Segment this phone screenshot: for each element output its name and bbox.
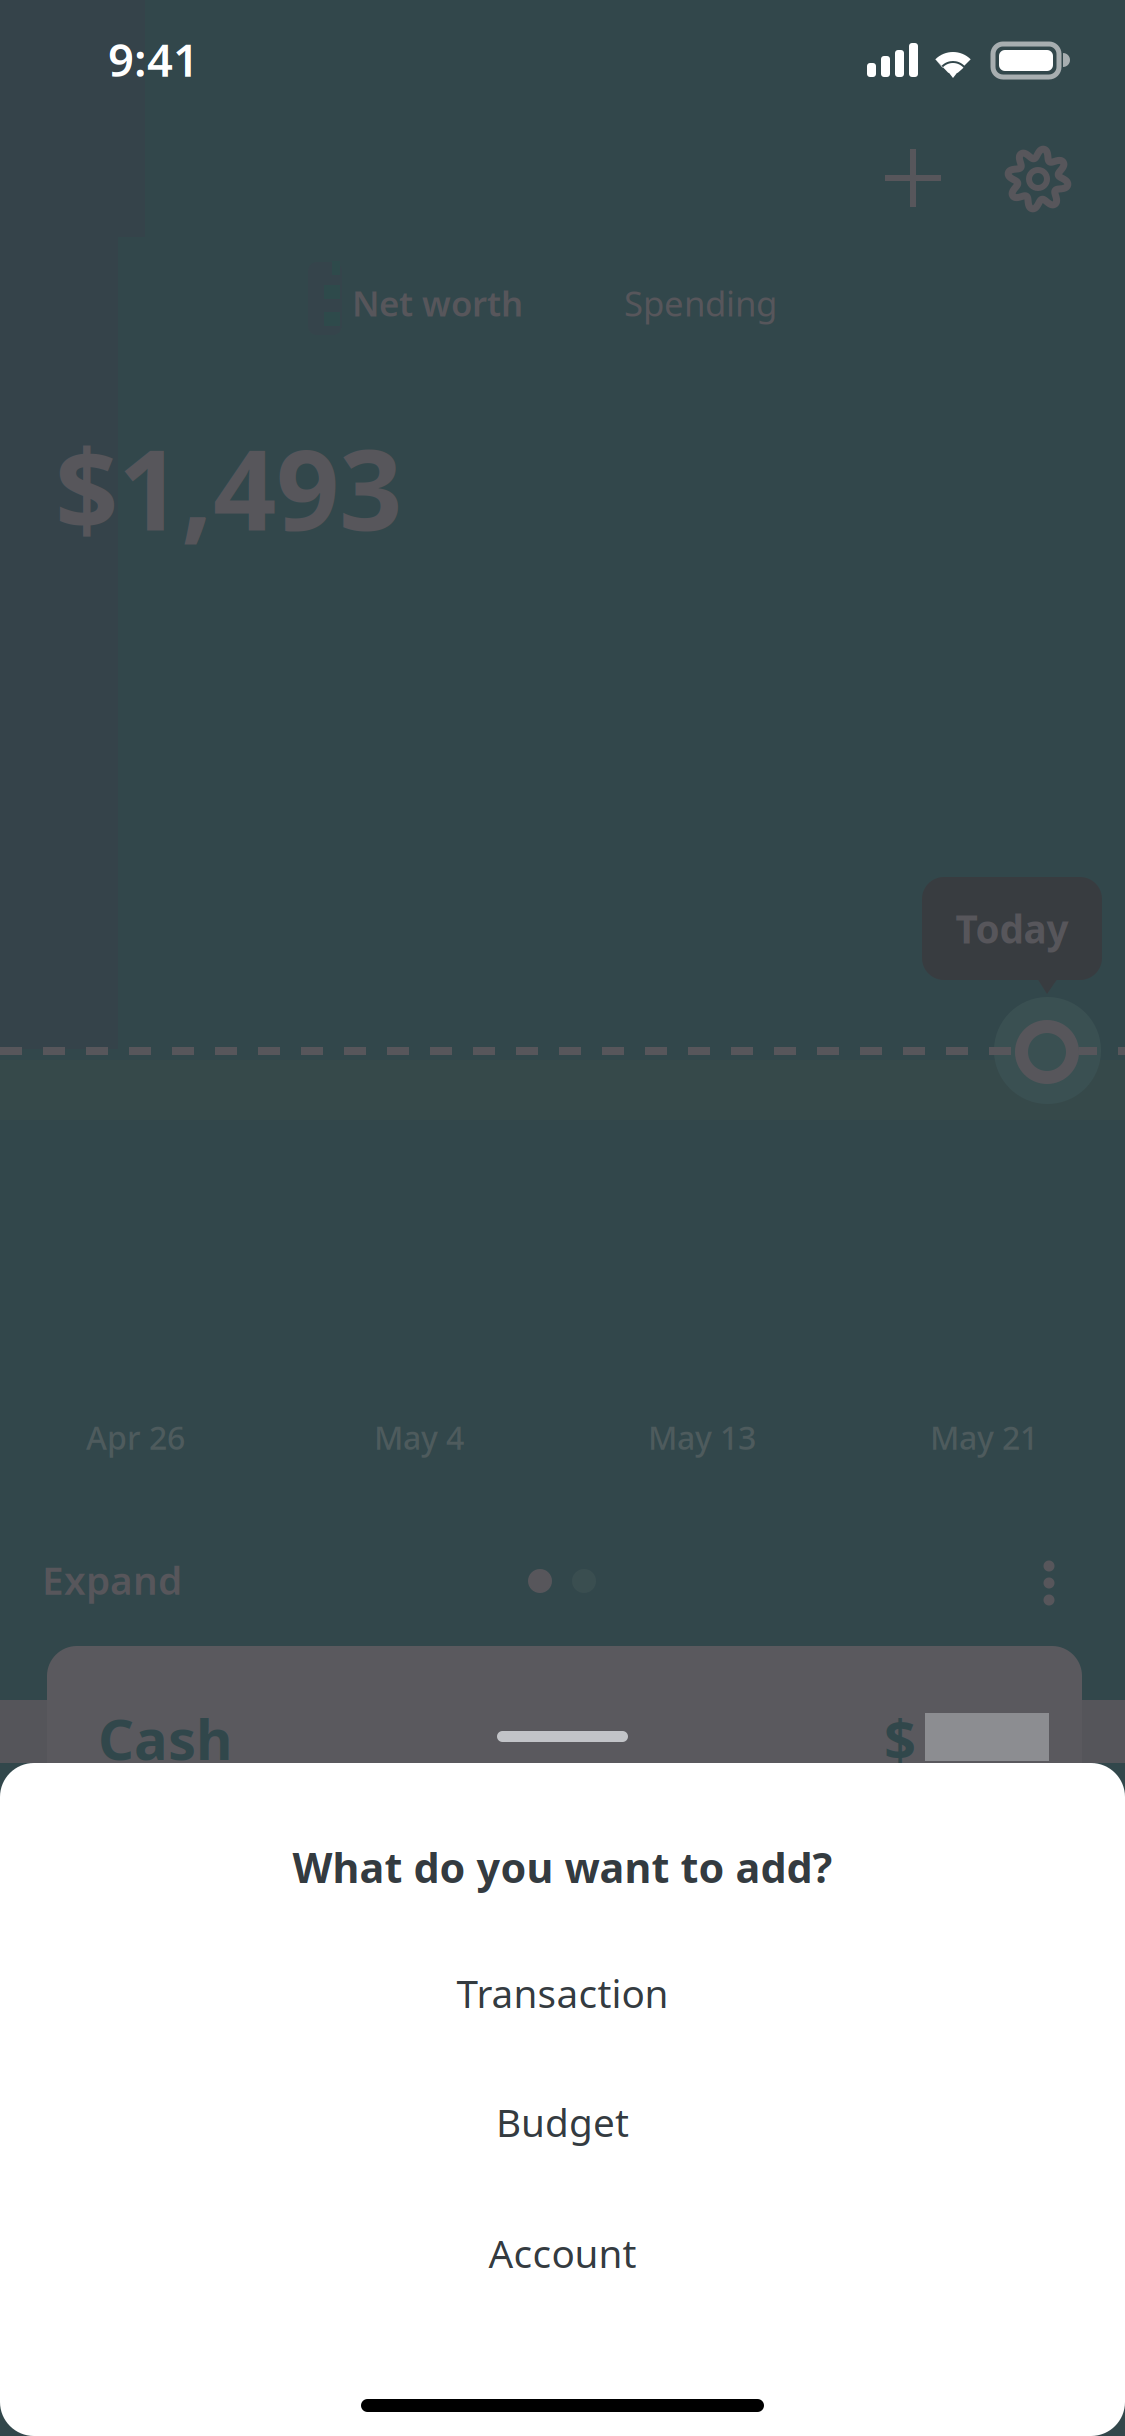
staticText: Account: [488, 2227, 636, 2279]
staticText: Expand: [42, 1554, 182, 1605]
staticText: Today: [955, 903, 1068, 954]
staticText: Spending: [624, 280, 777, 326]
staticText: What do you want to add?: [292, 1840, 832, 1894]
button[interactable]: Transaction: [0, 1949, 1125, 2037]
button[interactable]: Budget: [0, 2078, 1125, 2166]
staticText: Transaction: [456, 1967, 668, 2019]
staticText: Apr 26: [86, 1416, 185, 1458]
staticText: May 4: [374, 1416, 464, 1458]
button[interactable]: Account: [0, 2209, 1125, 2297]
button[interactable]: Expand: [42, 1554, 182, 1605]
staticText: 9:41: [108, 29, 199, 89]
staticText: May 13: [648, 1416, 756, 1458]
staticText: Cash: [98, 1701, 232, 1775]
staticText: $: [884, 1701, 916, 1775]
button[interactable]: Settings: [1005, 146, 1071, 212]
staticText: Budget: [496, 2096, 629, 2148]
button[interactable]: Add: [880, 145, 946, 211]
staticText: $1,493: [55, 414, 402, 561]
staticText: May 21: [930, 1416, 1038, 1458]
button[interactable]: More options: [1027, 1552, 1071, 1614]
staticText: Net worth: [352, 280, 523, 326]
button[interactable]: Net worth: [352, 280, 523, 326]
button[interactable]: Spending: [624, 280, 777, 326]
